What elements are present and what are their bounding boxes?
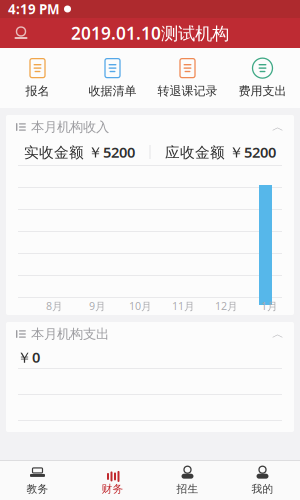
staticText: 1月 xyxy=(261,299,278,313)
button[interactable]: Collapse xyxy=(266,323,290,345)
button[interactable]: 收据清单 xyxy=(75,48,150,108)
staticText: 8月 xyxy=(46,299,63,313)
staticText: 本月机构收入 xyxy=(31,119,109,135)
staticText: 4:19 PM xyxy=(8,0,60,18)
staticText: 11月 xyxy=(172,299,195,313)
staticText: 费用支出 xyxy=(238,84,286,98)
button[interactable]: 费用支出 xyxy=(225,48,300,108)
staticText: 应收金额 ￥5200 xyxy=(165,142,276,162)
staticText: 9月 xyxy=(89,299,106,313)
staticText: 12月 xyxy=(215,299,238,313)
button[interactable]: 转退课记录 xyxy=(150,48,225,108)
button[interactable]: 招生 xyxy=(150,461,225,500)
staticText: 2019.01.10测试机构 xyxy=(71,21,229,44)
staticText: 10月 xyxy=(129,299,152,313)
staticText: 招生 xyxy=(176,482,198,495)
staticText: 转退课记录 xyxy=(157,84,217,98)
staticText: 财务 xyxy=(101,482,123,495)
staticText: ︿ xyxy=(272,327,284,341)
button[interactable]: Collapse xyxy=(266,116,290,138)
staticText: 收据清单 xyxy=(88,84,136,98)
button[interactable]: 报名 xyxy=(0,48,75,108)
staticText: 我的 xyxy=(251,482,273,495)
staticText: ￥0 xyxy=(17,347,40,367)
staticText: 本月机构支出 xyxy=(31,326,109,342)
staticText: 实收金额 ￥5200 xyxy=(24,142,135,162)
button[interactable]: 教务 xyxy=(0,461,75,500)
button[interactable]: 财务 xyxy=(75,461,150,500)
staticText: ︿ xyxy=(272,120,284,134)
staticText: 教务 xyxy=(26,482,48,495)
staticText: 报名 xyxy=(25,84,49,98)
button[interactable]: 我的 xyxy=(225,461,300,500)
button[interactable]: Account xyxy=(4,18,38,48)
